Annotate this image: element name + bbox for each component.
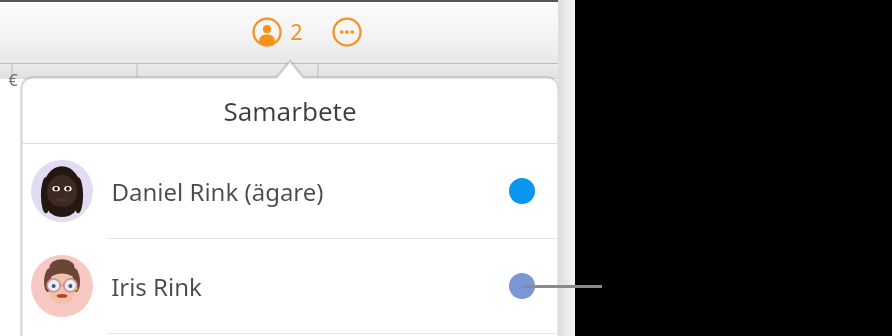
staticText: Daniel Rink (ägare)	[111, 175, 324, 208]
button[interactable]: Iris Rink	[22, 239, 558, 333]
staticText: Samarbete	[223, 93, 357, 128]
staticText: Iris Rink	[111, 270, 202, 303]
button[interactable]: Collaborate participants	[252, 17, 282, 47]
staticText: 2	[290, 18, 303, 47]
button[interactable]: More options	[332, 17, 362, 47]
staticText: €	[8, 69, 18, 91]
button[interactable]: Daniel Rink (ägare)	[22, 144, 558, 238]
